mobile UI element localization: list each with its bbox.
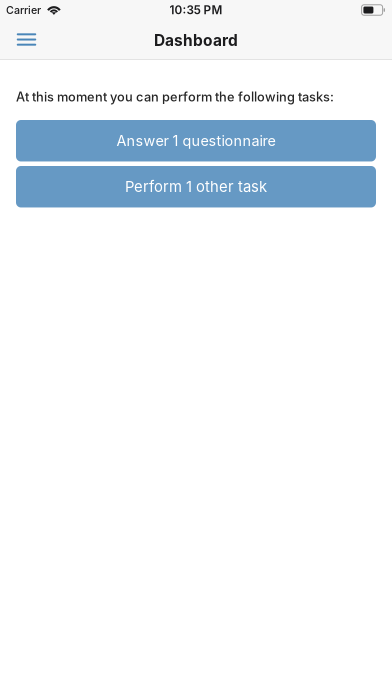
staticText: 10:35 PM [169, 3, 222, 17]
staticText: Answer 1 questionnaire [116, 132, 275, 149]
button[interactable]: Menu [4, 20, 48, 59]
button[interactable]: Answer 1 questionnaire [16, 120, 376, 161]
staticText: Dashboard [154, 31, 238, 50]
button[interactable]: Perform 1 other task [16, 166, 376, 207]
staticText: Carrier [6, 3, 41, 16]
staticText: Perform 1 other task [125, 178, 267, 196]
staticText: At this moment you can perform the follo… [16, 89, 334, 104]
